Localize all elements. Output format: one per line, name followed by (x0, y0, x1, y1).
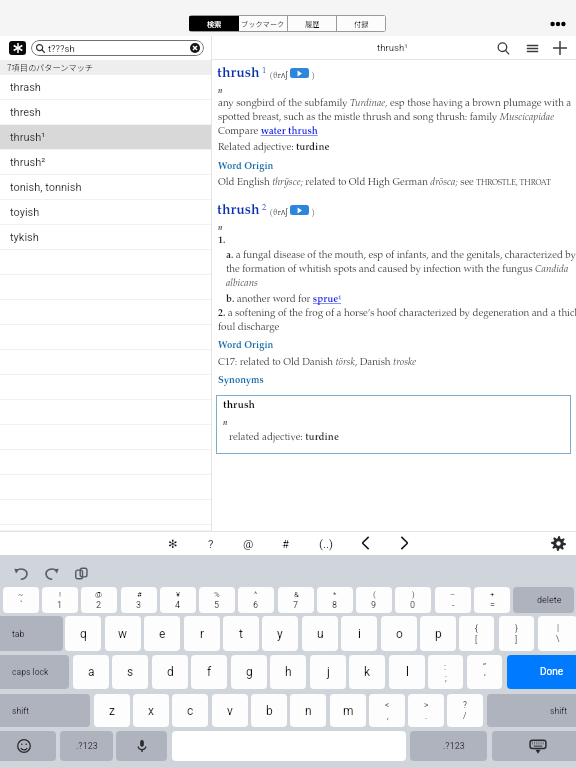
button[interactable]: u (302, 616, 338, 651)
button[interactable]: Undo (10, 562, 32, 584)
button[interactable]: z (94, 694, 130, 727)
button[interactable]: t???sh (31, 40, 204, 56)
button[interactable]: 履歴 (288, 16, 336, 31)
button[interactable]: Play pronunciation (290, 68, 309, 78)
button[interactable]: shift (487, 694, 576, 727)
button[interactable]: > (408, 694, 444, 727)
button[interactable]: thresh (0, 100, 211, 125)
button[interactable]: Next (392, 531, 416, 555)
button[interactable]: & (278, 587, 314, 613)
button[interactable]: q (65, 616, 101, 651)
button[interactable]: Previous (353, 531, 377, 555)
button[interactable]: n (290, 694, 326, 727)
button[interactable]: caps lock (0, 655, 69, 689)
button[interactable]: h (270, 655, 306, 689)
button[interactable]: ( (356, 587, 392, 613)
button[interactable]: @ (81, 587, 117, 613)
button[interactable]: Redo (40, 562, 62, 584)
button[interactable]: v (212, 694, 248, 727)
button[interactable]: .?123 (410, 731, 487, 761)
button[interactable]: } (499, 616, 534, 651)
button[interactable]: c (172, 694, 208, 727)
button[interactable]: : (428, 655, 463, 689)
button[interactable]: < (369, 694, 405, 727)
button[interactable]: Hide keyboard (492, 731, 576, 761)
button[interactable]: # (121, 587, 157, 613)
button[interactable]: thrush² (0, 150, 211, 175)
button[interactable]: o (381, 616, 417, 651)
button[interactable]: p (420, 616, 456, 651)
button[interactable]: e (144, 616, 180, 651)
button[interactable]: thrush¹ (0, 125, 211, 150)
button[interactable]: g (231, 655, 267, 689)
button[interactable]: .?123 (60, 731, 113, 761)
button[interactable]: – (435, 587, 471, 613)
button[interactable]: Dictate (116, 731, 167, 761)
button[interactable]: { (459, 616, 494, 651)
button[interactable]: b (251, 694, 287, 727)
button[interactable]: Clear search (188, 41, 202, 55)
button[interactable]: delete (513, 587, 574, 613)
button[interactable]: 付録 (337, 16, 385, 31)
button[interactable]: Menu (523, 39, 541, 57)
button[interactable]: Wildcard (9, 41, 26, 55)
button[interactable]: i (341, 616, 377, 651)
button[interactable]: w (105, 616, 141, 651)
button[interactable]: thrash (0, 75, 211, 100)
button[interactable]: + (474, 587, 510, 613)
button[interactable]: Done (507, 655, 576, 689)
button[interactable]: s (112, 655, 148, 689)
button[interactable]: * (317, 587, 353, 613)
button[interactable]: Add bookmark (551, 39, 569, 57)
button[interactable] (0, 525, 211, 531)
button[interactable]: Question mark (199, 531, 223, 555)
button[interactable]: m (330, 694, 366, 727)
button[interactable]: 検索 (189, 16, 239, 31)
button[interactable]: x (133, 694, 169, 727)
button[interactable]: l (389, 655, 425, 689)
button[interactable]: y (262, 616, 298, 651)
button[interactable]: | (538, 616, 576, 651)
button[interactable]: Parentheses (314, 531, 338, 555)
button[interactable]: ! (42, 587, 78, 613)
button[interactable]: Hash (274, 531, 298, 555)
button[interactable]: Paste (70, 562, 92, 584)
button[interactable]: ” (467, 655, 502, 689)
button[interactable]: k (349, 655, 385, 689)
button[interactable]: t (223, 616, 259, 651)
button[interactable]: At sign (236, 531, 260, 555)
button[interactable]: a (73, 655, 109, 689)
button[interactable]: shift (0, 694, 90, 727)
button[interactable]: ブックマーク (239, 16, 287, 31)
button[interactable]: tykish (0, 225, 211, 250)
button[interactable]: f (191, 655, 227, 689)
button[interactable]: tab (0, 616, 63, 651)
button[interactable]: toyish (0, 200, 211, 225)
button[interactable]: % (199, 587, 235, 613)
button[interactable]: ~ (3, 587, 39, 613)
button[interactable]: Emoji (0, 731, 56, 761)
button[interactable]: More options (545, 11, 571, 37)
button[interactable]: r (184, 616, 220, 651)
button[interactable]: j (310, 655, 346, 689)
button[interactable]: Play pronunciation (290, 205, 309, 215)
button[interactable]: d (152, 655, 188, 689)
button[interactable]: Settings (546, 531, 570, 555)
button[interactable]: ) (395, 587, 431, 613)
button[interactable]: Search (494, 39, 512, 57)
button[interactable]: tonish, tonnish (0, 175, 211, 200)
button[interactable]: ¥ (160, 587, 196, 613)
button[interactable]: ^ (238, 587, 274, 613)
button[interactable]: Wildcard (161, 531, 185, 555)
